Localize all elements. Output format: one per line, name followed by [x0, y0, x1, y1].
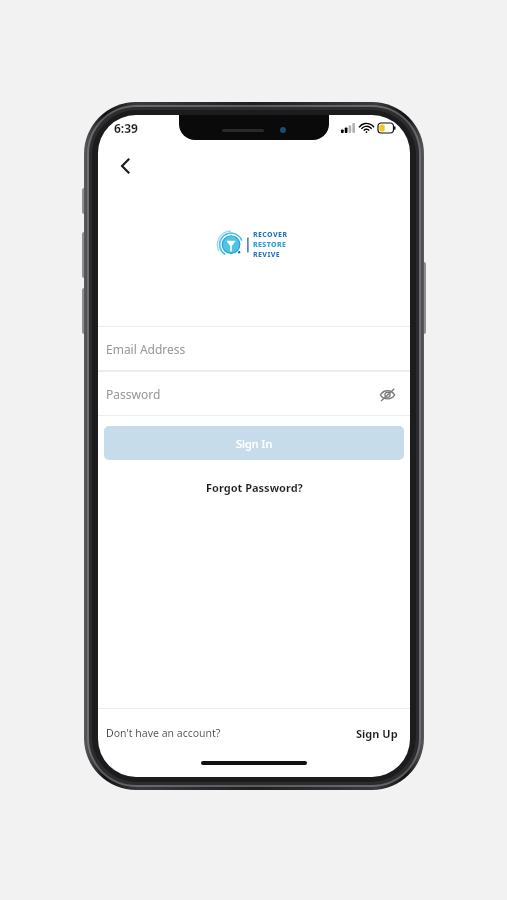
button[interactable]: Toggle password visibility: [372, 379, 402, 409]
button[interactable]: Password: [98, 372, 410, 415]
staticText: Sign Up: [356, 726, 398, 741]
button[interactable]: Forgot Password?: [196, 476, 313, 499]
staticText: Don't have an account?: [106, 726, 221, 740]
staticText: 6:39: [114, 120, 138, 136]
staticText: REVIVE: [253, 250, 281, 260]
button[interactable]: Email Address: [98, 327, 410, 370]
button[interactable]: Sign In: [104, 426, 404, 460]
button[interactable]: Back: [104, 144, 148, 188]
staticText: Email Address: [106, 341, 186, 357]
staticText: Password: [106, 386, 161, 402]
button[interactable]: Sign Up: [352, 720, 402, 747]
staticText: Sign In: [236, 436, 273, 451]
staticText: Forgot Password?: [206, 480, 303, 495]
staticText: RECOVER: [253, 230, 288, 240]
staticText: RESTORE: [253, 240, 287, 250]
